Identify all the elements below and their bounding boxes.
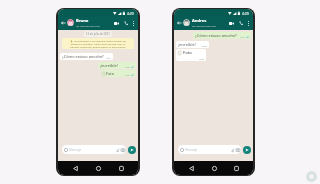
button[interactable]: Mensaje — [178, 145, 241, 154]
staticText: ¿Cómo estuvo anoche? — [62, 54, 104, 59]
staticText: Foto — [183, 50, 192, 56]
button[interactable]: Mensaje — [62, 145, 126, 154]
staticText: ¿Cómo estuvo anoche? — [195, 33, 237, 38]
button[interactable]: ¡increíble! — [98, 62, 136, 69]
staticText: Mensaje — [69, 148, 82, 152]
staticText: ¡increíble! — [178, 42, 196, 47]
button[interactable]: Video call — [112, 18, 121, 28]
button[interactable]: Back — [185, 162, 197, 174]
button[interactable]: Foto — [176, 49, 206, 61]
staticText: 3:38 — [125, 73, 130, 76]
button[interactable]: Call — [121, 18, 130, 28]
staticText: Mensaje — [185, 148, 198, 152]
button[interactable]: More options — [130, 18, 136, 28]
staticText: 14 de julio de 2021 — [86, 32, 110, 36]
staticText: últ. vez hoy a las 3:40 — [76, 24, 100, 27]
button[interactable]: Recent apps — [230, 162, 242, 174]
staticText: 3:38 — [199, 57, 204, 60]
staticText: 4:29 — [127, 11, 134, 16]
button[interactable]: Video call — [227, 18, 236, 28]
staticText: Bruno — [76, 18, 89, 24]
button[interactable]: ¡increíble! — [176, 41, 209, 48]
button[interactable]: Home — [208, 162, 220, 174]
staticText: Foto — [106, 71, 115, 76]
button[interactable]: Home — [92, 162, 104, 174]
staticText: 🔒 Los mensajes y las llamadas están cifr… — [67, 39, 129, 48]
button[interactable]: Back — [69, 162, 81, 174]
button[interactable]: ¿Cómo estuvo anoche? — [60, 53, 113, 60]
button[interactable]: Call — [236, 18, 245, 28]
staticText: 3:37 — [106, 56, 111, 59]
staticText: ¡increíble! — [100, 63, 118, 68]
button[interactable]: Foto — [101, 70, 136, 77]
button[interactable]: Send — [128, 146, 136, 154]
button[interactable]: Back — [176, 18, 182, 27]
staticText: 3:38 — [125, 65, 130, 68]
staticText: Andres — [192, 18, 207, 24]
staticText: 4:29 — [242, 11, 249, 16]
button[interactable]: Back — [60, 18, 66, 27]
button[interactable]: Send — [243, 146, 251, 154]
staticText: últ. vez hoy a las 3:40 — [192, 24, 216, 27]
staticText: 3:37 — [240, 35, 245, 38]
button[interactable]: More options — [245, 18, 251, 28]
button[interactable]: ¿Cómo estuvo anoche? — [193, 32, 251, 39]
staticText: 3:38 — [202, 44, 207, 47]
button[interactable]: Recent apps — [115, 162, 127, 174]
